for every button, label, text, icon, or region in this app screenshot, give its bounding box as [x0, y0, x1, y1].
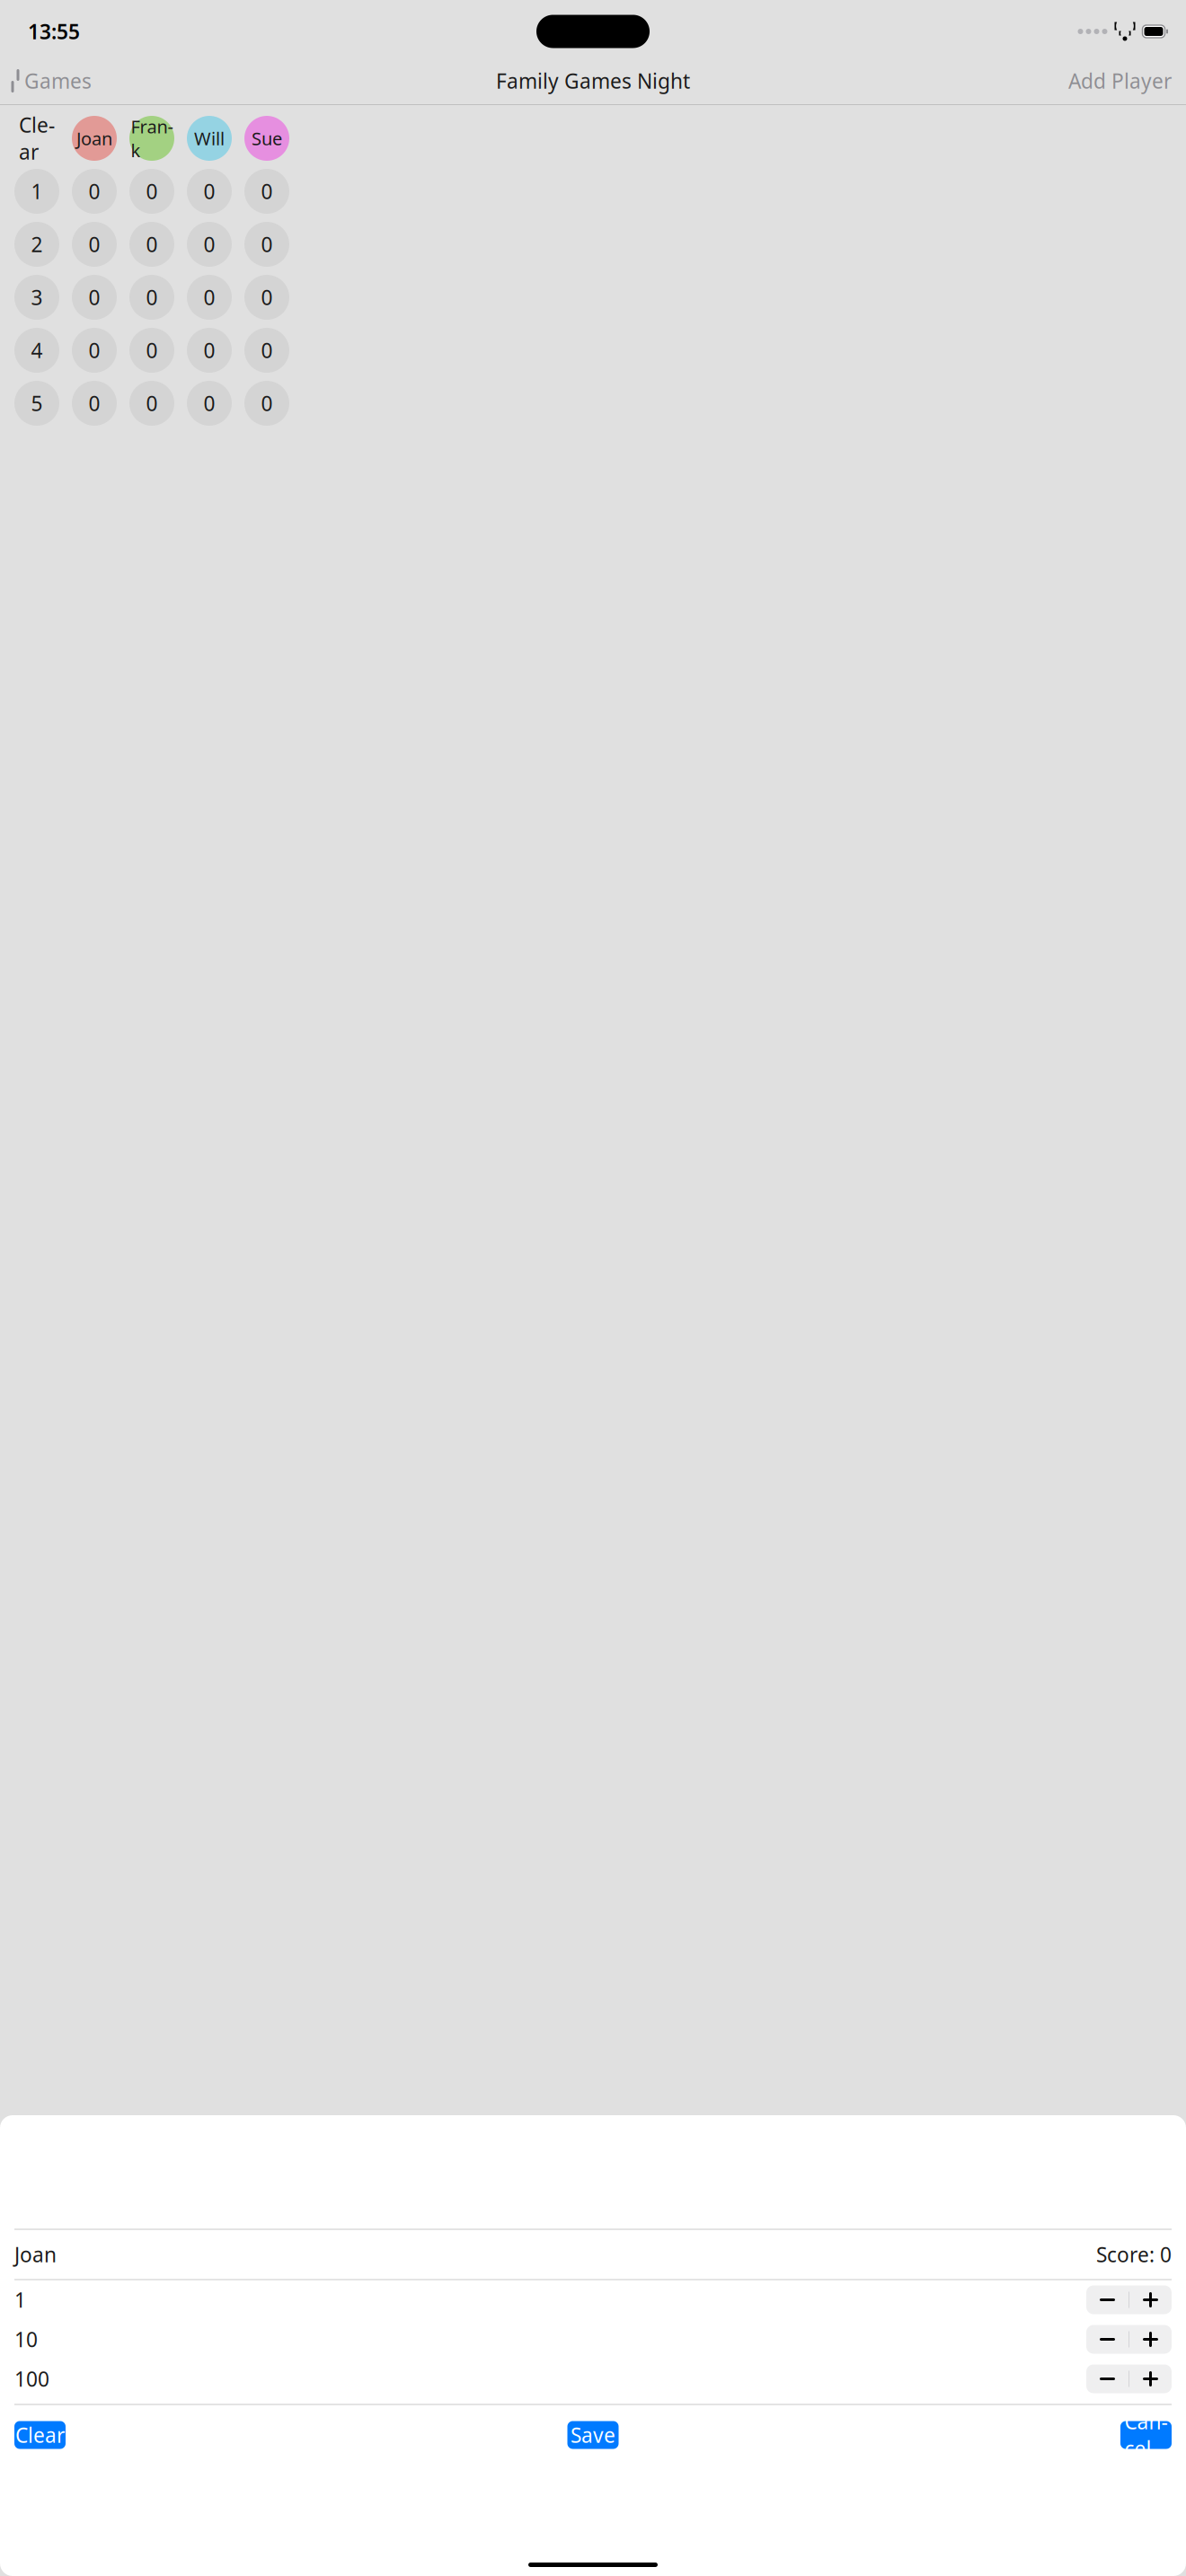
staticText: Save [571, 2421, 615, 2448]
button[interactable]: Will [187, 116, 232, 161]
staticText: 3 [31, 284, 43, 311]
button[interactable]: 0 [129, 328, 174, 373]
staticText: 0 [204, 337, 215, 364]
button[interactable]: 5 [14, 381, 59, 426]
button[interactable]: 1 [14, 169, 59, 214]
staticText: 13:55 [28, 18, 80, 45]
button[interactable]: 0 [187, 222, 232, 267]
button[interactable]: 2 [14, 222, 59, 267]
staticText: 0 [146, 231, 158, 258]
staticText: 0 [89, 284, 100, 311]
button[interactable]: 0 [72, 169, 117, 214]
button[interactable]: Cancel [1120, 2421, 1172, 2449]
button[interactable]: 3 [14, 275, 59, 320]
staticText: Cancel [1124, 2408, 1168, 2462]
staticText: Family Games Night [496, 67, 690, 94]
staticText: 0 [261, 337, 273, 364]
button[interactable]: Increase [1129, 2285, 1172, 2314]
staticText: 0 [261, 284, 273, 311]
button[interactable]: 0 [129, 275, 174, 320]
button[interactable]: 0 [244, 275, 289, 320]
staticText: 1 [14, 2286, 26, 2313]
staticText: Frank [131, 114, 173, 162]
staticText: Joan [14, 2241, 57, 2268]
staticText: 5 [31, 390, 43, 417]
button[interactable]: Sue [244, 116, 289, 161]
staticText: 0 [204, 178, 215, 205]
staticText: 100 [14, 2365, 49, 2392]
button[interactable]: Increase [1129, 2325, 1172, 2354]
button[interactable]: 0 [244, 169, 289, 214]
button[interactable]: Decrease [1086, 2285, 1128, 2314]
staticText: 0 [146, 337, 158, 364]
staticText: 2 [31, 231, 43, 258]
button[interactable]: Add Player [1068, 58, 1186, 103]
staticText: 0 [89, 337, 100, 364]
button[interactable]: Increase [1129, 2364, 1172, 2393]
button[interactable]: 0 [244, 381, 289, 426]
staticText: 0 [146, 284, 158, 311]
staticText: 0 [204, 284, 215, 311]
staticText: 0 [204, 231, 215, 258]
button[interactable]: 4 [14, 328, 59, 373]
staticText: 0 [261, 390, 273, 417]
staticText: 4 [31, 337, 43, 364]
staticText: 0 [89, 390, 100, 417]
button[interactable]: 0 [187, 381, 232, 426]
button[interactable]: Games [0, 58, 92, 103]
button[interactable]: 0 [244, 222, 289, 267]
button[interactable]: Decrease [1086, 2325, 1128, 2354]
button[interactable]: 0 [72, 222, 117, 267]
button[interactable]: Decrease [1086, 2364, 1128, 2393]
button[interactable]: 0 [129, 381, 174, 426]
staticText: 0 [261, 178, 273, 205]
staticText: Clear [19, 111, 55, 165]
button[interactable]: Joan [72, 116, 117, 161]
button[interactable]: 0 [72, 381, 117, 426]
button[interactable]: 0 [244, 328, 289, 373]
staticText: Sue [252, 126, 282, 150]
staticText: 0 [204, 390, 215, 417]
staticText: Games [24, 67, 92, 94]
button[interactable]: 0 [129, 169, 174, 214]
button[interactable]: Save [567, 2421, 619, 2449]
staticText: Joan [76, 126, 112, 150]
staticText: 0 [146, 178, 158, 205]
staticText: 0 [89, 231, 100, 258]
button[interactable]: 0 [187, 275, 232, 320]
staticText: 1 [31, 178, 43, 205]
staticText: 0 [146, 390, 158, 417]
button[interactable]: 0 [187, 169, 232, 214]
button[interactable]: 0 [129, 222, 174, 267]
staticText: Clear [15, 2421, 65, 2448]
staticText: 0 [89, 178, 100, 205]
staticText: Will [194, 126, 225, 150]
button[interactable]: Clear [14, 2421, 66, 2449]
button[interactable]: Clear [14, 116, 59, 161]
button[interactable]: 0 [72, 328, 117, 373]
button[interactable]: 0 [187, 328, 232, 373]
staticText: Score: 0 [1096, 2241, 1172, 2268]
button[interactable]: 0 [72, 275, 117, 320]
staticText: Add Player [1068, 67, 1172, 94]
staticText: 0 [261, 231, 273, 258]
staticText: 10 [14, 2326, 38, 2353]
button[interactable]: Frank [129, 116, 174, 161]
